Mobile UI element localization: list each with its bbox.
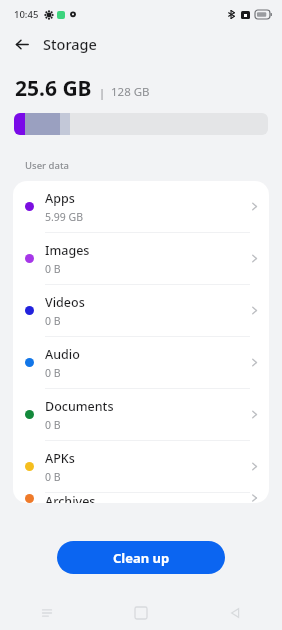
- button[interactable]: Archives: [13, 493, 269, 503]
- staticText: 0 B: [45, 366, 61, 380]
- button[interactable]: Apps: [13, 181, 269, 232]
- staticText: 128 GB: [111, 84, 150, 100]
- staticText: 0 B: [45, 418, 61, 432]
- staticText: Storage: [43, 34, 97, 54]
- staticText: APKs: [45, 450, 75, 467]
- staticText: 0 B: [45, 470, 61, 484]
- staticText: 10:45: [14, 8, 39, 21]
- staticText: |: [99, 85, 106, 100]
- staticText: Videos: [45, 294, 85, 311]
- staticText: 5.99 GB: [45, 210, 84, 224]
- button[interactable]: Audio: [13, 337, 269, 388]
- staticText: Images: [45, 242, 90, 259]
- button[interactable]: Documents: [13, 389, 269, 440]
- staticText: Archives: [45, 493, 96, 503]
- staticText: Documents: [45, 398, 114, 415]
- staticText: 0 B: [45, 314, 61, 328]
- staticText: Apps: [45, 190, 75, 207]
- button[interactable]: Videos: [13, 285, 269, 336]
- button[interactable]: Clean up: [57, 541, 225, 574]
- button[interactable]: APKs: [13, 441, 269, 492]
- staticText: Clean up: [113, 549, 170, 567]
- button[interactable]: Home: [94, 596, 188, 630]
- button[interactable]: Images: [13, 233, 269, 284]
- staticText: 25.6 GB: [15, 74, 92, 103]
- button[interactable]: Back: [8, 30, 36, 58]
- staticText: User data: [25, 159, 69, 172]
- staticText: 0 B: [45, 262, 61, 276]
- staticText: Audio: [45, 346, 80, 363]
